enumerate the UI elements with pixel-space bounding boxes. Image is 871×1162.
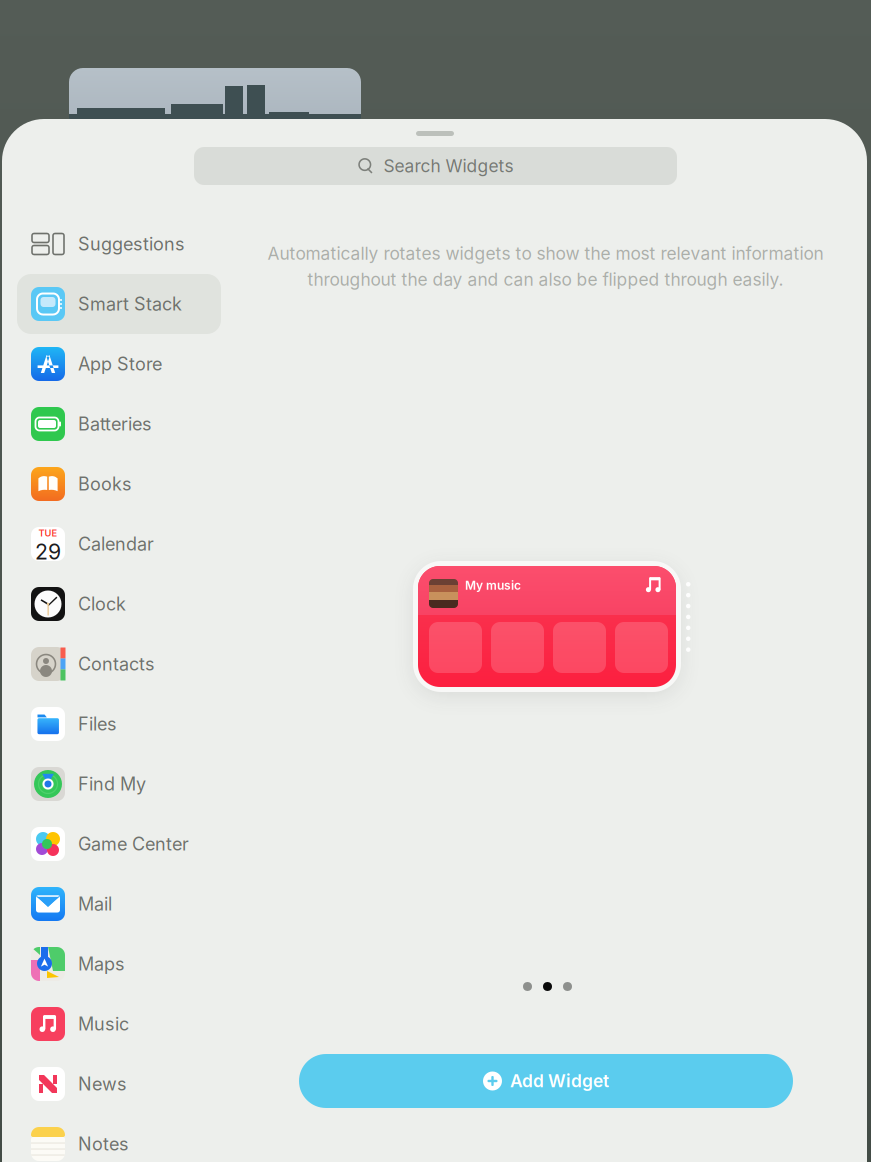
staticText: App Store	[78, 353, 162, 375]
button[interactable]: Mail	[17, 874, 221, 934]
staticText: Smart Stack	[78, 293, 182, 315]
staticText: Contacts	[78, 653, 155, 675]
staticText: Suggestions	[78, 233, 185, 255]
button[interactable]: App Store	[17, 334, 221, 394]
staticText: Automatically rotates widgets to show th…	[267, 243, 823, 264]
staticText: Music	[78, 1013, 129, 1035]
staticText: Maps	[78, 953, 125, 975]
button[interactable]: Batteries	[17, 394, 221, 454]
button[interactable]: Notes	[17, 1114, 221, 1162]
button[interactable]: Maps	[17, 934, 221, 994]
staticText: Notes	[78, 1133, 129, 1155]
staticText: My music	[465, 578, 521, 592]
button[interactable]: News	[17, 1054, 221, 1114]
button[interactable]: Smart Stack	[17, 274, 221, 334]
button[interactable]: Add Widget	[299, 1054, 793, 1108]
staticText: TUE	[38, 527, 57, 539]
staticText: throughout the day and can also be flipp…	[307, 269, 783, 290]
button[interactable]: Game Center	[17, 814, 221, 874]
staticText: Search Widgets	[383, 155, 513, 176]
staticText: 29	[35, 539, 61, 564]
staticText: Find My	[78, 773, 146, 795]
button[interactable]: Clock	[17, 574, 221, 634]
staticText: Game Center	[78, 833, 189, 855]
staticText: Files	[78, 713, 117, 735]
staticText: Batteries	[78, 413, 152, 435]
staticText: Clock	[78, 593, 126, 615]
staticText: Books	[78, 473, 132, 495]
button[interactable]: Books	[17, 454, 221, 514]
staticText: Mail	[78, 893, 112, 915]
button[interactable]: Suggestions	[17, 214, 221, 274]
button[interactable]: Contacts	[17, 634, 221, 694]
staticText: News	[78, 1073, 127, 1095]
button[interactable]: Music	[17, 994, 221, 1054]
button[interactable]: Find My	[17, 754, 221, 814]
button[interactable]: Files	[17, 694, 221, 754]
staticText: Calendar	[78, 533, 154, 555]
button[interactable]: TUE	[17, 514, 221, 574]
staticText: Add Widget	[510, 1070, 609, 1091]
